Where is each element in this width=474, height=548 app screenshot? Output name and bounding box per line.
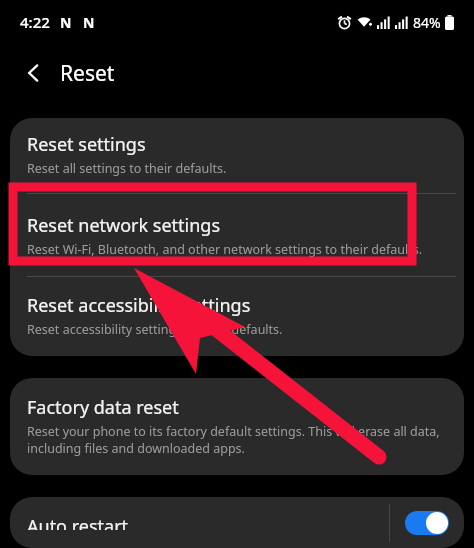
button[interactable]: Factory data reset bbox=[10, 378, 464, 475]
staticText: Auto restart bbox=[27, 514, 129, 530]
staticText: Reset Wi-Fi, Bluetooth, and other networ… bbox=[27, 241, 423, 258]
staticText: Reset accessibility settings to their de… bbox=[27, 321, 283, 338]
staticText: Reset network settings bbox=[27, 213, 221, 238]
staticText: Factory data reset bbox=[27, 395, 179, 420]
button[interactable]: Reset network settings bbox=[10, 194, 464, 276]
staticText: 84% bbox=[413, 13, 441, 32]
button[interactable]: Auto restart bbox=[10, 497, 464, 548]
staticText: N bbox=[60, 13, 72, 32]
staticText: Reset bbox=[60, 59, 115, 88]
button[interactable]: Reset accessibility settings bbox=[10, 277, 464, 356]
staticText: Reset your phone to its factory default … bbox=[27, 423, 448, 457]
staticText: N bbox=[83, 13, 95, 32]
staticText: Reset all settings to their defaults. bbox=[27, 160, 227, 177]
button[interactable]: Reset settings bbox=[10, 118, 464, 193]
staticText: Reset settings bbox=[27, 132, 146, 157]
staticText: 4:22 bbox=[20, 12, 50, 32]
button[interactable]: Auto restart toggle, On bbox=[403, 503, 451, 543]
staticText: Reset accessibility settings bbox=[27, 293, 251, 318]
button[interactable]: Back bbox=[14, 53, 54, 93]
